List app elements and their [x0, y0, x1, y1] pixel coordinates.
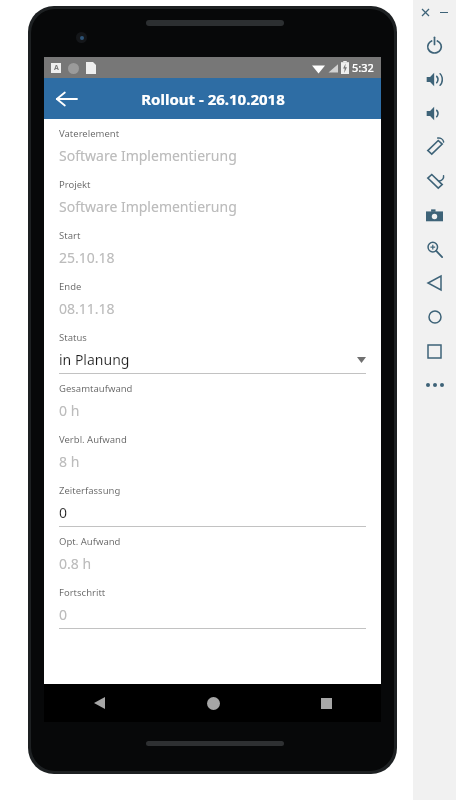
button[interactable]: Gesamtaufwand: [59, 380, 366, 431]
staticText: Gesamtaufwand: [59, 382, 133, 395]
button[interactable]: Ende: [59, 278, 366, 329]
button[interactable]: Recent apps: [309, 686, 343, 720]
staticText: 0: [59, 503, 68, 522]
button[interactable]: More: [413, 368, 456, 402]
button[interactable]: Vaterelement: [59, 125, 366, 176]
button[interactable]: Start: [59, 227, 366, 278]
button[interactable]: Zoom: [413, 232, 456, 266]
button[interactable]: Zeiterfassung: [59, 482, 366, 533]
staticText: 0.8 h: [59, 554, 92, 573]
button[interactable]: Status: [59, 329, 366, 380]
staticText: Rollout - 26.10.2018: [141, 89, 285, 109]
button[interactable]: Opt. Aufwand: [59, 533, 366, 584]
button[interactable]: Close: [418, 5, 432, 19]
button[interactable]: Back: [44, 78, 88, 119]
button[interactable]: Take screenshot: [413, 198, 456, 232]
staticText: 25.10.18: [59, 248, 115, 267]
button[interactable]: Volume up: [413, 62, 456, 96]
staticText: A: [54, 63, 59, 73]
staticText: Zeiterfassung: [59, 484, 121, 497]
staticText: 0 h: [59, 401, 80, 420]
staticText: Verbl. Aufwand: [59, 433, 127, 446]
button[interactable]: Back: [413, 266, 456, 300]
staticText: Ende: [59, 280, 82, 293]
button[interactable]: Verbl. Aufwand: [59, 431, 366, 482]
staticText: Software Implementierung: [59, 146, 237, 165]
staticText: Projekt: [59, 178, 91, 191]
staticText: Status: [59, 331, 87, 344]
staticText: 5:32: [352, 60, 374, 75]
button[interactable]: Rotate right: [413, 164, 456, 198]
button[interactable]: Home: [196, 686, 230, 720]
staticText: 8 h: [59, 452, 80, 471]
staticText: Opt. Aufwand: [59, 535, 121, 548]
staticText: Fortschritt: [59, 586, 106, 599]
staticText: in Planung: [59, 350, 130, 369]
button[interactable]: Overview: [413, 334, 456, 368]
button[interactable]: Projekt: [59, 176, 366, 227]
staticText: Vaterelement: [59, 127, 120, 140]
button[interactable]: Fortschritt: [59, 584, 366, 635]
button[interactable]: Back: [82, 686, 116, 720]
button[interactable]: Home: [413, 300, 456, 334]
staticText: Start: [59, 229, 81, 242]
staticText: 0: [59, 605, 68, 624]
button[interactable]: Rotate left: [413, 130, 456, 164]
button[interactable]: Volume down: [413, 96, 456, 130]
staticText: 08.11.18: [59, 299, 115, 318]
staticText: Software Implementierung: [59, 197, 237, 216]
button[interactable]: Minimize: [437, 5, 451, 19]
button[interactable]: Power: [413, 28, 456, 62]
